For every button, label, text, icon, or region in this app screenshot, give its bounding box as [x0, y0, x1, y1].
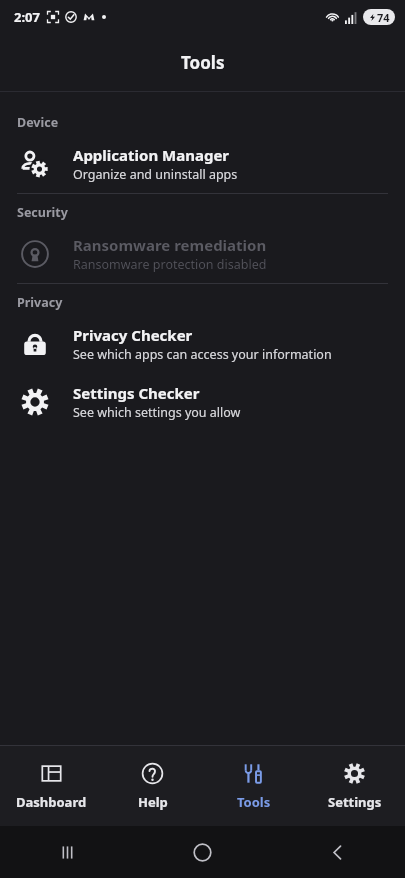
- staticText: 74: [377, 10, 390, 25]
- button[interactable]: Settings: [304, 754, 405, 819]
- button[interactable]: Back: [270, 826, 405, 878]
- button[interactable]: Privacy Checker: [0, 315, 405, 373]
- staticText: Privacy: [17, 294, 63, 311]
- staticText: Tools: [181, 51, 225, 74]
- button[interactable]: Settings Checker: [0, 373, 405, 431]
- staticText: Ransomware remediation: [73, 235, 267, 255]
- button[interactable]: Tools: [203, 754, 304, 819]
- staticText: Privacy Checker: [73, 325, 193, 345]
- button[interactable]: Ransomware remediation: [0, 225, 405, 283]
- staticText: Application Manager: [73, 145, 230, 165]
- staticText: Security: [17, 204, 68, 221]
- staticText: Settings Checker: [73, 383, 200, 403]
- button[interactable]: Recent apps: [0, 826, 135, 878]
- staticText: Ransomware protection disabled: [73, 256, 267, 273]
- staticText: 2:07: [14, 8, 40, 26]
- staticText: See which apps can access your informati…: [73, 346, 332, 363]
- staticText: Dashboard: [16, 793, 87, 811]
- staticText: Settings: [328, 793, 382, 811]
- button[interactable]: Help: [102, 754, 203, 819]
- button[interactable]: Dashboard: [0, 754, 102, 819]
- staticText: Help: [138, 793, 168, 811]
- staticText: Organize and uninstall apps: [73, 166, 238, 183]
- staticText: See which settings you allow: [73, 404, 241, 421]
- staticText: Tools: [237, 793, 271, 811]
- button[interactable]: Application Manager: [0, 135, 405, 193]
- staticText: Device: [17, 114, 59, 131]
- button[interactable]: Home: [135, 826, 270, 878]
